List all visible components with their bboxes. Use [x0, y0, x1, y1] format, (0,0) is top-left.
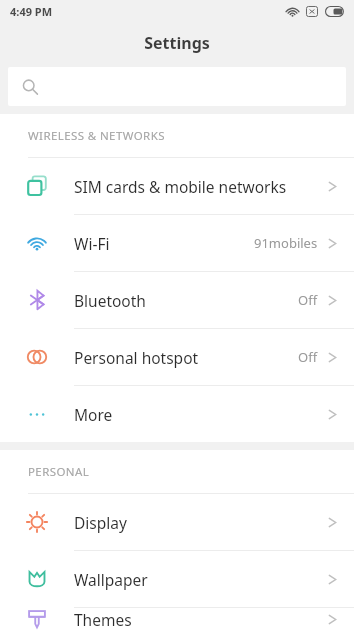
button[interactable]: Personal hotspot	[0, 329, 354, 386]
staticText: Settings	[144, 32, 210, 54]
staticText: Bluetooth	[74, 290, 298, 311]
staticText: PERSONAL	[28, 464, 90, 480]
staticText: WIRELESS & NETWORKS	[28, 128, 165, 144]
staticText: Off	[298, 348, 318, 366]
button[interactable]: Themes	[0, 608, 354, 630]
button[interactable]: Wallpaper	[0, 551, 354, 608]
staticText: 91mobiles	[254, 234, 318, 252]
staticText: Off	[298, 291, 318, 309]
staticText: Wallpaper	[74, 569, 328, 590]
staticText: Wi-Fi	[74, 233, 254, 254]
staticText: More	[74, 404, 328, 425]
staticText: 4:49 PM	[10, 4, 53, 19]
button[interactable]: Bluetooth	[0, 272, 354, 329]
staticText: SIM cards & mobile networks	[74, 176, 328, 197]
button[interactable]: Display	[0, 494, 354, 551]
staticText: Display	[74, 512, 328, 533]
button[interactable]: SIM cards & mobile networks	[0, 158, 354, 215]
staticText: Personal hotspot	[74, 347, 298, 368]
button[interactable]: Search	[8, 67, 346, 106]
other: Search	[22, 79, 38, 95]
staticText: Themes	[74, 609, 328, 630]
button[interactable]: More	[0, 386, 354, 442]
button[interactable]: Wi-Fi	[0, 215, 354, 272]
